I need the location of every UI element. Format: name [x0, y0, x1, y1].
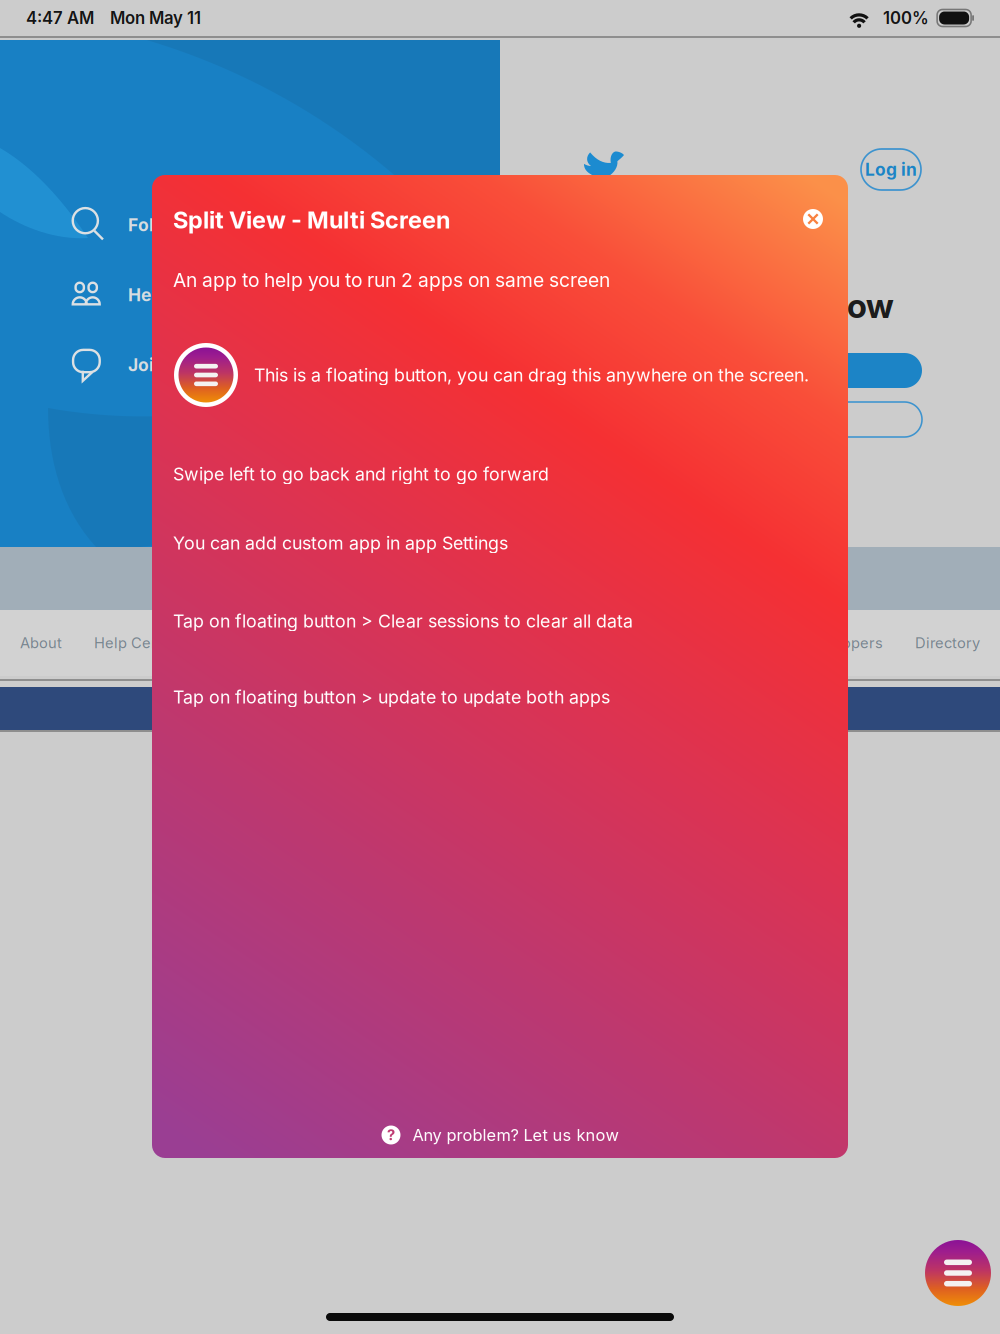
staticText: See what's happening in the world right … [592, 205, 894, 326]
staticText: 4:47 AM [26, 8, 94, 28]
staticText: Swipe left to go back and right to go fo… [173, 463, 549, 485]
staticText: Join the conversation. [128, 354, 318, 375]
button[interactable]: ? [152, 1112, 848, 1158]
staticText: Mon May 11 [110, 8, 201, 28]
button[interactable]: Directory [915, 634, 980, 652]
button[interactable]: Help Center [94, 634, 180, 652]
button[interactable]: About [20, 634, 62, 652]
staticText: About [20, 634, 62, 652]
staticText: Tap on floating button > update to updat… [173, 686, 610, 708]
staticText: Split View - Multi Screen [173, 206, 450, 234]
staticText: 100% [883, 8, 929, 28]
staticText: Follow your interests. [128, 214, 312, 235]
staticText: Directory [915, 634, 980, 652]
button[interactable]: Log in [861, 149, 921, 190]
staticText: Help Center [94, 634, 180, 652]
staticText: Developers [802, 634, 883, 652]
staticText: An app to help you to run 2 apps on same… [173, 268, 610, 292]
button[interactable] [592, 353, 922, 388]
staticText: This is a floating button, you can drag … [254, 364, 809, 386]
button[interactable] [592, 402, 922, 437]
button[interactable]: Open menu [925, 1240, 991, 1306]
staticText: Hear what people are talking about. [128, 284, 429, 305]
button[interactable]: Developers [802, 634, 883, 652]
staticText: ? [387, 1126, 395, 1144]
staticText: Log in [865, 159, 917, 180]
staticText: the extension in your browser settings a… [322, 581, 677, 599]
staticText: You can add custom app in app Settings [173, 532, 508, 554]
button[interactable]: Close [791, 197, 835, 241]
staticText: Tap on floating button > Clear sessions … [173, 610, 633, 632]
staticText: This is the legal bit. By using Twitter … [220, 558, 780, 576]
staticText: Any problem? Let us know [412, 1125, 618, 1145]
